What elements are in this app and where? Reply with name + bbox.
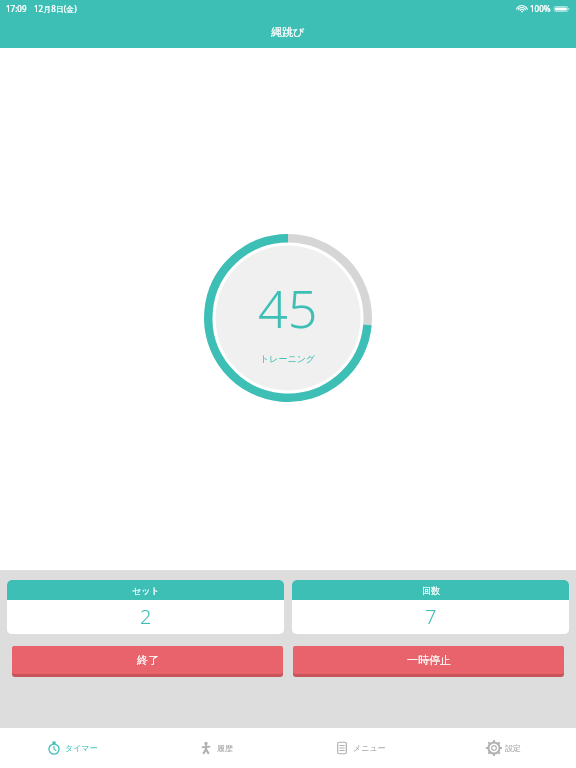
staticText: トレーニング <box>260 353 316 364</box>
staticText: 終了 <box>137 653 159 667</box>
staticText: 17:09 <box>6 3 27 14</box>
button[interactable]: 回数 <box>292 580 569 634</box>
button[interactable]: タイマー <box>0 728 144 768</box>
staticText: 縄跳び <box>271 25 305 39</box>
staticText: 100% <box>530 3 551 14</box>
staticText: 45 <box>258 272 318 343</box>
button[interactable]: メニュー <box>288 728 432 768</box>
staticText: 回数 <box>422 585 440 596</box>
staticText: タイマー <box>65 743 98 753</box>
staticText: 履歴 <box>217 743 233 753</box>
staticText: 一時停止 <box>407 653 451 667</box>
staticText: 12月8日(金) <box>34 3 77 14</box>
staticText: 2 <box>140 603 152 630</box>
button[interactable]: 一時停止 <box>293 646 564 678</box>
button[interactable]: セット <box>7 580 284 634</box>
staticText: 7 <box>425 603 437 630</box>
staticText: セット <box>132 585 160 596</box>
button[interactable]: 履歴 <box>144 728 288 768</box>
staticText: メニュー <box>353 743 386 753</box>
button[interactable]: 終了 <box>12 646 283 678</box>
button[interactable]: 設定 <box>432 728 576 768</box>
staticText: 設定 <box>505 743 521 753</box>
